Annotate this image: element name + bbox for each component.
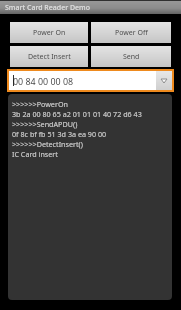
staticText: >>>>>>DetectInsert() [12,139,83,149]
staticText: Detect Insert [28,52,71,62]
button[interactable]: Power On [10,22,88,43]
staticText: IC Card insert [12,149,58,159]
staticText: >>>>>>SendAPDU() [12,119,78,129]
button[interactable]: Detect Insert [10,46,88,67]
button[interactable]: Power Off [91,22,171,43]
button[interactable]: Show suggestions [156,71,172,90]
button[interactable]: Send [91,46,171,67]
staticText: Power On [33,28,66,38]
staticText: 00 84 00 00 08 [13,75,74,87]
button[interactable]: 00 84 00 00 08 [9,71,156,90]
staticText: >>>>>>PowerOn [12,99,68,109]
button[interactable]: >>>>>>PowerOn [8,94,172,300]
staticText: Smart Card Reader Demo [5,3,91,13]
staticText: Send [123,52,140,62]
staticText: 0f 8c bf fb 51 3d 3a ea 90 00 [12,129,107,139]
staticText: 3b 2a 00 80 65 a2 01 01 01 40 72 d6 43 [12,109,142,119]
staticText: Power Off [115,28,148,38]
